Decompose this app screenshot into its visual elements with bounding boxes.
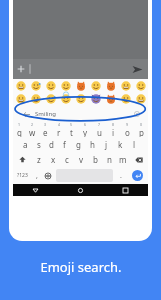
button[interactable]: m bbox=[116, 152, 130, 167]
button[interactable]: d bbox=[45, 137, 58, 152]
button[interactable]: Clear search bbox=[131, 108, 143, 120]
button[interactable]: j bbox=[99, 137, 113, 152]
button[interactable]: f bbox=[58, 137, 71, 152]
button[interactable]: 4 bbox=[52, 122, 65, 137]
staticText: Emoji search. bbox=[40, 258, 122, 276]
button[interactable]: Emoji bbox=[28, 93, 43, 104]
staticText: e bbox=[43, 127, 48, 137]
button[interactable]: . bbox=[115, 169, 127, 182]
staticText: y bbox=[83, 127, 88, 137]
staticText: 8 bbox=[112, 122, 115, 127]
button[interactable]: l bbox=[127, 137, 141, 152]
staticText: l bbox=[133, 139, 136, 150]
button[interactable]: Change keyboard language bbox=[42, 169, 54, 182]
button[interactable]: x bbox=[46, 152, 60, 167]
button[interactable]: Emoji bbox=[58, 80, 73, 91]
button[interactable]: Emoji bbox=[28, 80, 43, 91]
button[interactable]: Back bbox=[13, 106, 148, 122]
staticText: b bbox=[93, 154, 98, 165]
staticText: t bbox=[70, 127, 73, 137]
button[interactable]: k bbox=[113, 137, 127, 152]
button[interactable]: Emoji bbox=[118, 93, 133, 104]
button[interactable]: Recent apps bbox=[103, 184, 148, 196]
staticText: 4 bbox=[58, 122, 61, 127]
staticText: 3 bbox=[44, 122, 47, 127]
button[interactable]: Emoji bbox=[43, 93, 58, 104]
staticText: , bbox=[36, 171, 38, 181]
button[interactable]: ?123 bbox=[13, 169, 31, 182]
staticText: k bbox=[118, 139, 123, 150]
staticText: Smiling bbox=[35, 110, 56, 118]
button[interactable]: Emoji bbox=[133, 93, 148, 104]
button[interactable]: Back bbox=[13, 184, 58, 196]
button[interactable]: Emoji bbox=[43, 80, 58, 91]
staticText: m bbox=[119, 154, 127, 165]
staticText: 6 bbox=[84, 122, 87, 127]
button[interactable]: Emoji bbox=[73, 93, 88, 104]
staticText: ?123 bbox=[17, 172, 28, 179]
staticText: w bbox=[29, 127, 36, 137]
button[interactable]: 8 bbox=[106, 122, 120, 137]
staticText: f bbox=[63, 139, 66, 150]
button[interactable]: s bbox=[32, 137, 45, 152]
staticText: v bbox=[79, 154, 84, 165]
button[interactable]: Send bbox=[126, 59, 148, 79]
button[interactable]: g bbox=[71, 137, 85, 152]
button[interactable]: 5 bbox=[65, 122, 78, 137]
button[interactable]: Add attachment bbox=[13, 59, 29, 79]
button[interactable]: Enter bbox=[132, 170, 143, 181]
button[interactable] bbox=[29, 59, 126, 79]
button[interactable]: b bbox=[88, 152, 102, 167]
staticText: 0 bbox=[140, 122, 143, 127]
button[interactable]: 7 bbox=[92, 122, 106, 137]
staticText: g bbox=[76, 139, 81, 150]
staticText: 9 bbox=[126, 122, 129, 127]
staticText: n bbox=[107, 154, 112, 165]
button[interactable]: z bbox=[32, 152, 46, 167]
staticText: 7 bbox=[98, 122, 101, 127]
button[interactable]: 3 bbox=[39, 122, 52, 137]
staticText: z bbox=[37, 154, 41, 165]
staticText: o bbox=[125, 127, 130, 137]
button[interactable]: Emoji bbox=[58, 93, 73, 104]
button[interactable]: Shift bbox=[13, 152, 32, 167]
button[interactable]: Emoji bbox=[103, 93, 118, 104]
button[interactable]: Emoji bbox=[103, 80, 118, 91]
staticText: c bbox=[65, 154, 69, 165]
button[interactable]: , bbox=[31, 169, 42, 182]
button[interactable]: Emoji bbox=[73, 80, 88, 91]
button[interactable]: Emoji bbox=[13, 80, 28, 91]
staticText: u bbox=[97, 127, 102, 137]
button[interactable]: Home bbox=[58, 184, 103, 196]
button[interactable]: Back bbox=[21, 109, 31, 119]
staticText: h bbox=[90, 139, 95, 150]
staticText: 1 bbox=[18, 122, 21, 127]
button[interactable]: v bbox=[74, 152, 88, 167]
staticText: r bbox=[57, 127, 61, 137]
button[interactable]: 6 bbox=[78, 122, 92, 137]
button[interactable]: 2 bbox=[26, 122, 39, 137]
staticText: j bbox=[105, 139, 108, 150]
staticText: . bbox=[120, 171, 122, 181]
staticText: a bbox=[23, 139, 28, 150]
button[interactable]: c bbox=[60, 152, 74, 167]
staticText: 5 bbox=[70, 122, 73, 127]
button[interactable]: Backspace bbox=[130, 152, 148, 167]
staticText: d bbox=[49, 139, 54, 150]
staticText: s bbox=[37, 139, 41, 150]
staticText: q bbox=[17, 127, 22, 137]
button[interactable]: Emoji bbox=[133, 80, 148, 91]
button[interactable]: a bbox=[19, 137, 32, 152]
staticText: i bbox=[112, 127, 115, 137]
button[interactable]: Emoji bbox=[88, 80, 103, 91]
staticText: p bbox=[139, 127, 144, 137]
button[interactable]: Emoji bbox=[13, 93, 28, 104]
button[interactable]: 0 bbox=[134, 122, 148, 137]
button[interactable]: n bbox=[102, 152, 116, 167]
button[interactable]: h bbox=[85, 137, 99, 152]
button[interactable]: 1 bbox=[13, 122, 26, 137]
button[interactable]: 9 bbox=[120, 122, 134, 137]
button[interactable]: Emoji bbox=[118, 80, 133, 91]
button[interactable]: Emoji bbox=[88, 93, 103, 104]
